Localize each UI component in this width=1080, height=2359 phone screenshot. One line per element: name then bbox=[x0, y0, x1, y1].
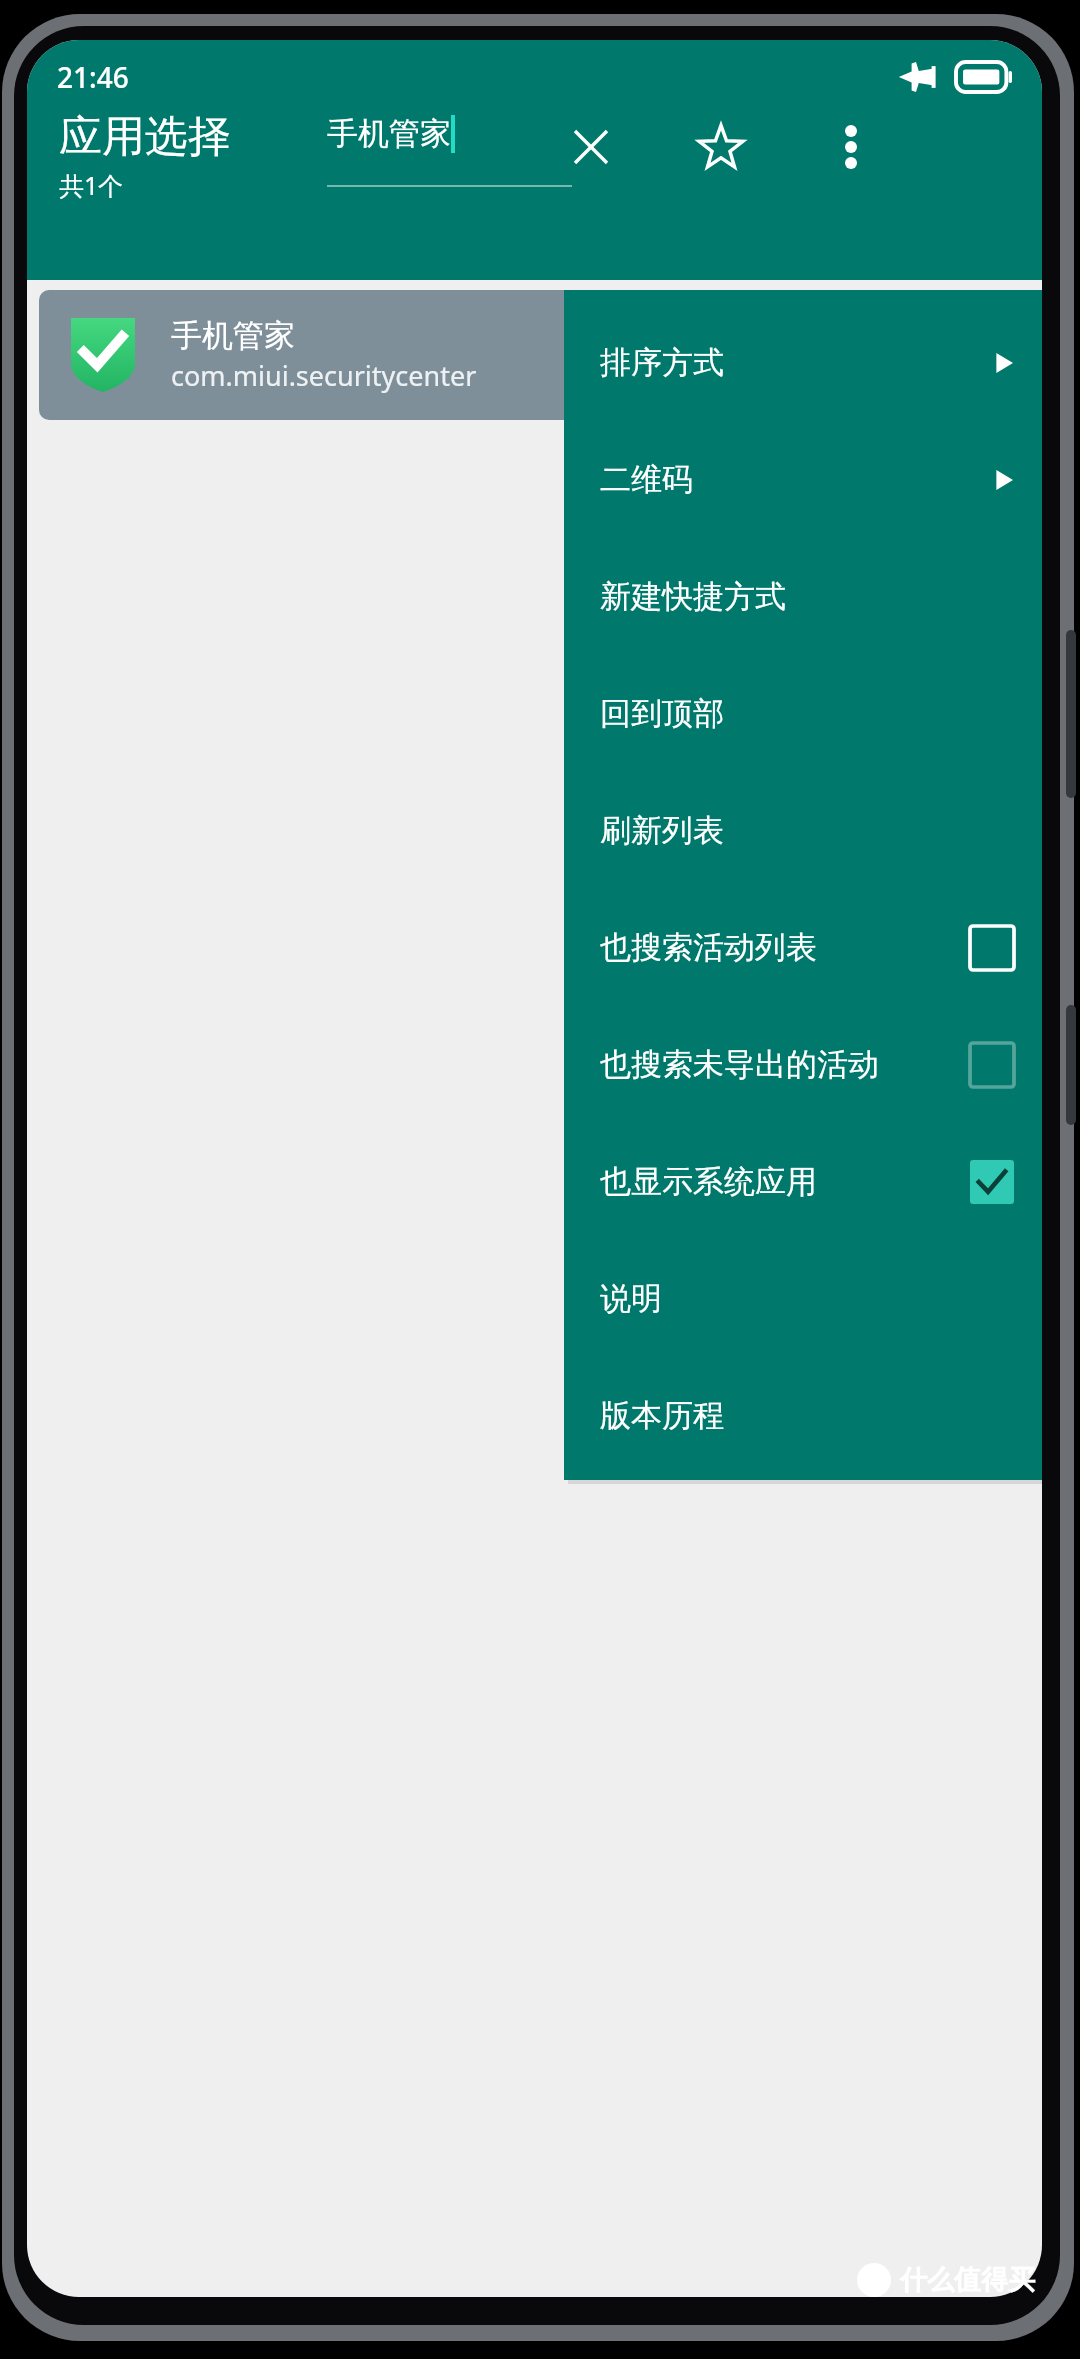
button[interactable]: 说明 bbox=[564, 1240, 1042, 1357]
staticText: com.miui.securitycenter bbox=[171, 357, 477, 394]
staticText: 21:46 bbox=[57, 58, 129, 96]
button[interactable]: 排序方式 bbox=[564, 304, 1042, 421]
staticText: 共1个 bbox=[59, 168, 124, 202]
button[interactable]: 手机管家 bbox=[327, 114, 572, 153]
button[interactable]: 也显示系统应用 bbox=[564, 1123, 1042, 1240]
button[interactable]: Clear search bbox=[552, 108, 630, 186]
staticText: 手机管家 bbox=[171, 316, 295, 355]
button[interactable]: Favorite bbox=[682, 108, 760, 186]
staticText: 排序方式 bbox=[600, 343, 724, 382]
button[interactable]: 版本历程 bbox=[564, 1357, 1042, 1474]
staticText: 刷新列表 bbox=[600, 811, 724, 850]
button[interactable]: 二维码 bbox=[564, 421, 1042, 538]
button[interactable]: 新建快捷方式 bbox=[564, 538, 1042, 655]
button[interactable]: 回到顶部 bbox=[564, 655, 1042, 772]
button[interactable]: 也搜索活动列表 bbox=[564, 889, 1042, 1006]
button[interactable]: 也搜索未导出的活动 bbox=[564, 1006, 1042, 1123]
staticText: 应用选择 bbox=[59, 110, 231, 164]
button[interactable]: 刷新列表 bbox=[564, 772, 1042, 889]
staticText: 说明 bbox=[600, 1279, 662, 1318]
button[interactable]: 手机管家 bbox=[39, 290, 1030, 420]
staticText: 回到顶部 bbox=[600, 694, 724, 733]
staticText: 新建快捷方式 bbox=[600, 577, 786, 616]
staticText: 版本历程 bbox=[600, 1396, 724, 1435]
staticText: 什么值得买 bbox=[900, 2263, 1035, 2297]
staticText: 也显示系统应用 bbox=[600, 1162, 817, 1201]
staticText: 也搜索未导出的活动 bbox=[600, 1045, 879, 1084]
button[interactable]: More options bbox=[812, 108, 890, 186]
staticText: 也搜索活动列表 bbox=[600, 928, 817, 967]
staticText: 二维码 bbox=[600, 460, 693, 499]
staticText: 手机管家 bbox=[327, 114, 451, 153]
